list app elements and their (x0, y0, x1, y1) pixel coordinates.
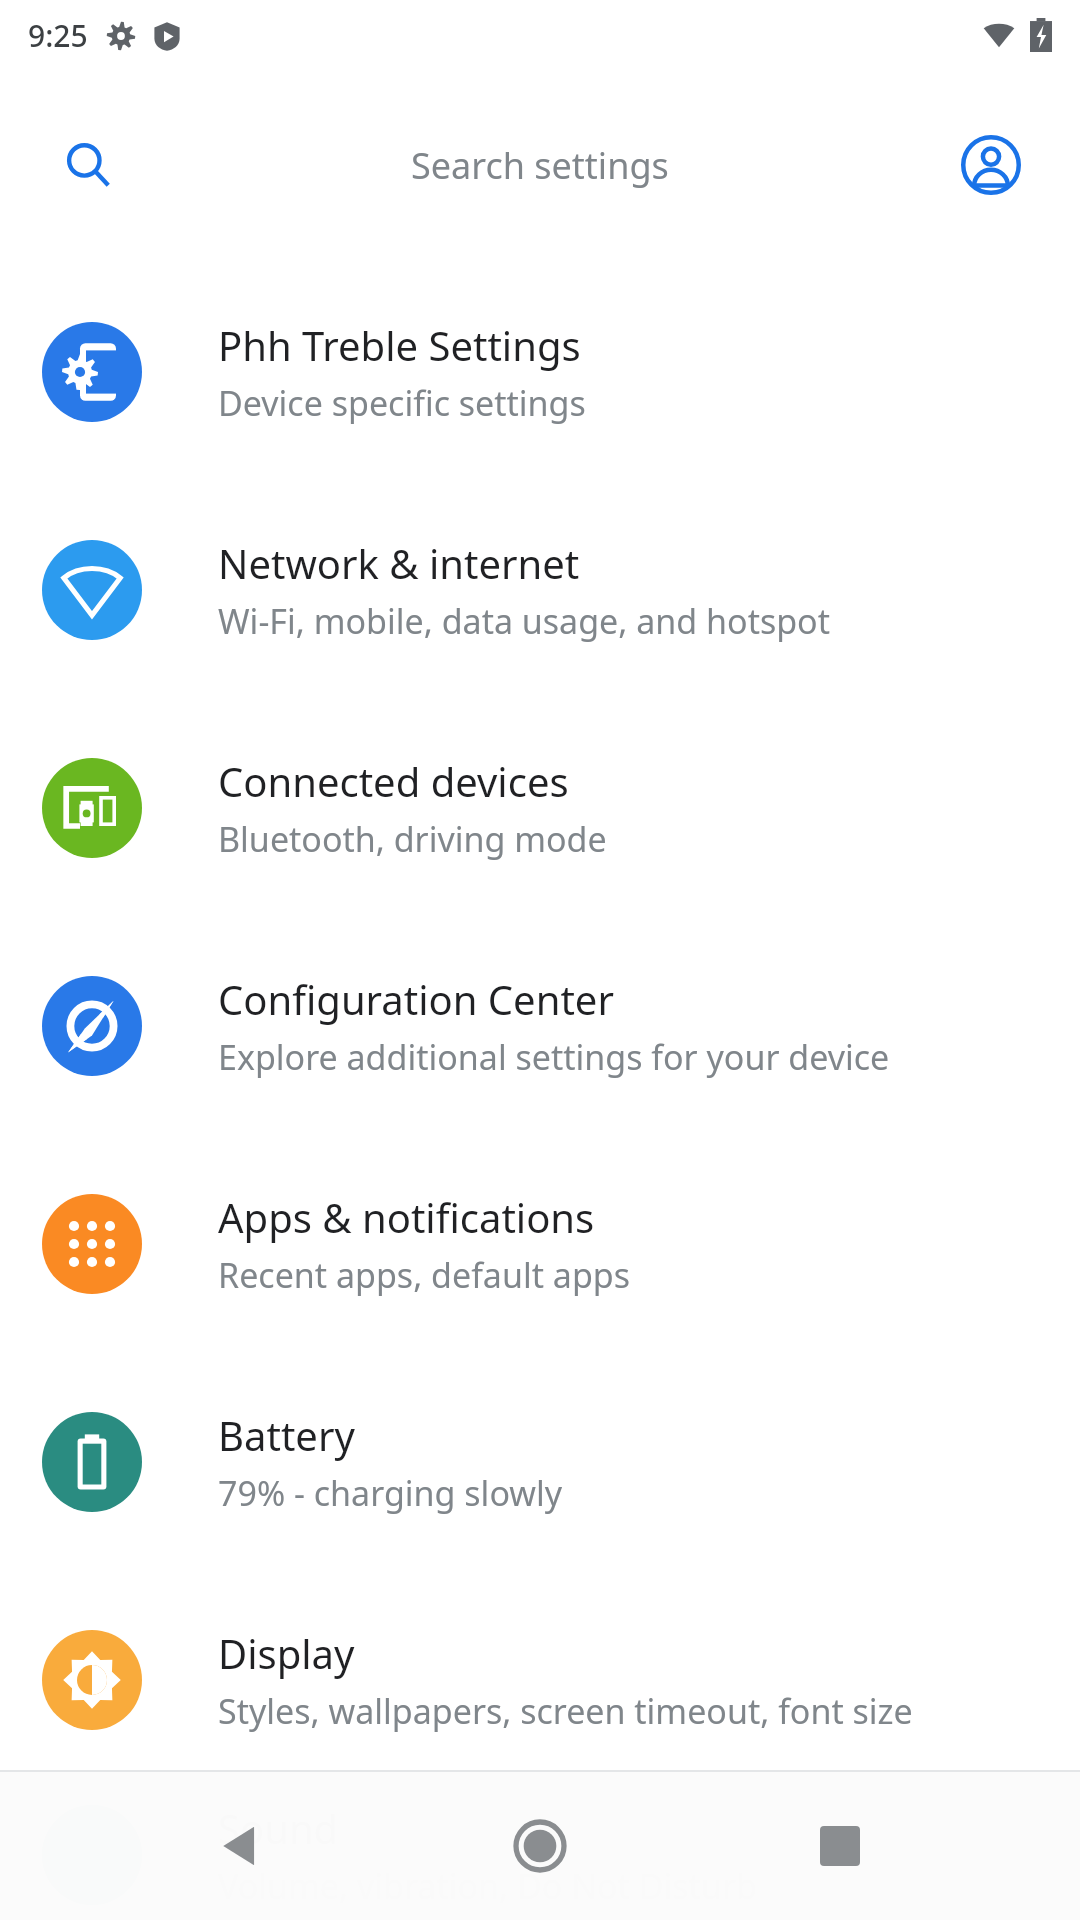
staticText: Explore additional settings for your dev… (218, 1034, 890, 1080)
button[interactable]: Phh Treble Settings (0, 263, 1080, 481)
other: Search (65, 142, 111, 188)
button[interactable]: Recent apps (780, 1786, 900, 1906)
button[interactable]: Configuration Center (0, 917, 1080, 1135)
staticText: 9:25 (28, 15, 88, 56)
button[interactable]: Battery (0, 1353, 1080, 1571)
staticText: Phh Treble Settings (218, 318, 581, 372)
staticText: Bluetooth, driving mode (218, 816, 607, 862)
staticText: Volume, vibration, Do Not Disturb (218, 1863, 757, 1909)
button[interactable]: Connected devices (0, 699, 1080, 917)
staticText: Connected devices (218, 754, 569, 808)
staticText: Battery (218, 1408, 355, 1462)
staticText: Display (218, 1626, 355, 1680)
button[interactable]: Sound (0, 1789, 1080, 1920)
staticText: Wi-Fi, mobile, data usage, and hotspot (218, 598, 830, 644)
staticText: Sound (218, 1801, 339, 1855)
staticText: Configuration Center (218, 972, 614, 1026)
button[interactable]: Home (480, 1786, 600, 1906)
button[interactable]: Network & internet (0, 481, 1080, 699)
button[interactable]: Search (25, 95, 1055, 235)
button[interactable]: Account (959, 133, 1023, 197)
button[interactable]: Apps & notifications (0, 1135, 1080, 1353)
staticText: Apps & notifications (218, 1190, 595, 1244)
button[interactable]: Back (180, 1786, 300, 1906)
staticText: Device specific settings (218, 380, 586, 426)
staticText: Network & internet (218, 536, 580, 590)
staticText: Recent apps, default apps (218, 1252, 631, 1298)
staticText: Styles, wallpapers, screen timeout, font… (218, 1688, 913, 1734)
staticText: Search settings (411, 141, 669, 190)
button[interactable]: Display (0, 1571, 1080, 1789)
staticText: 79% - charging slowly (218, 1470, 563, 1516)
